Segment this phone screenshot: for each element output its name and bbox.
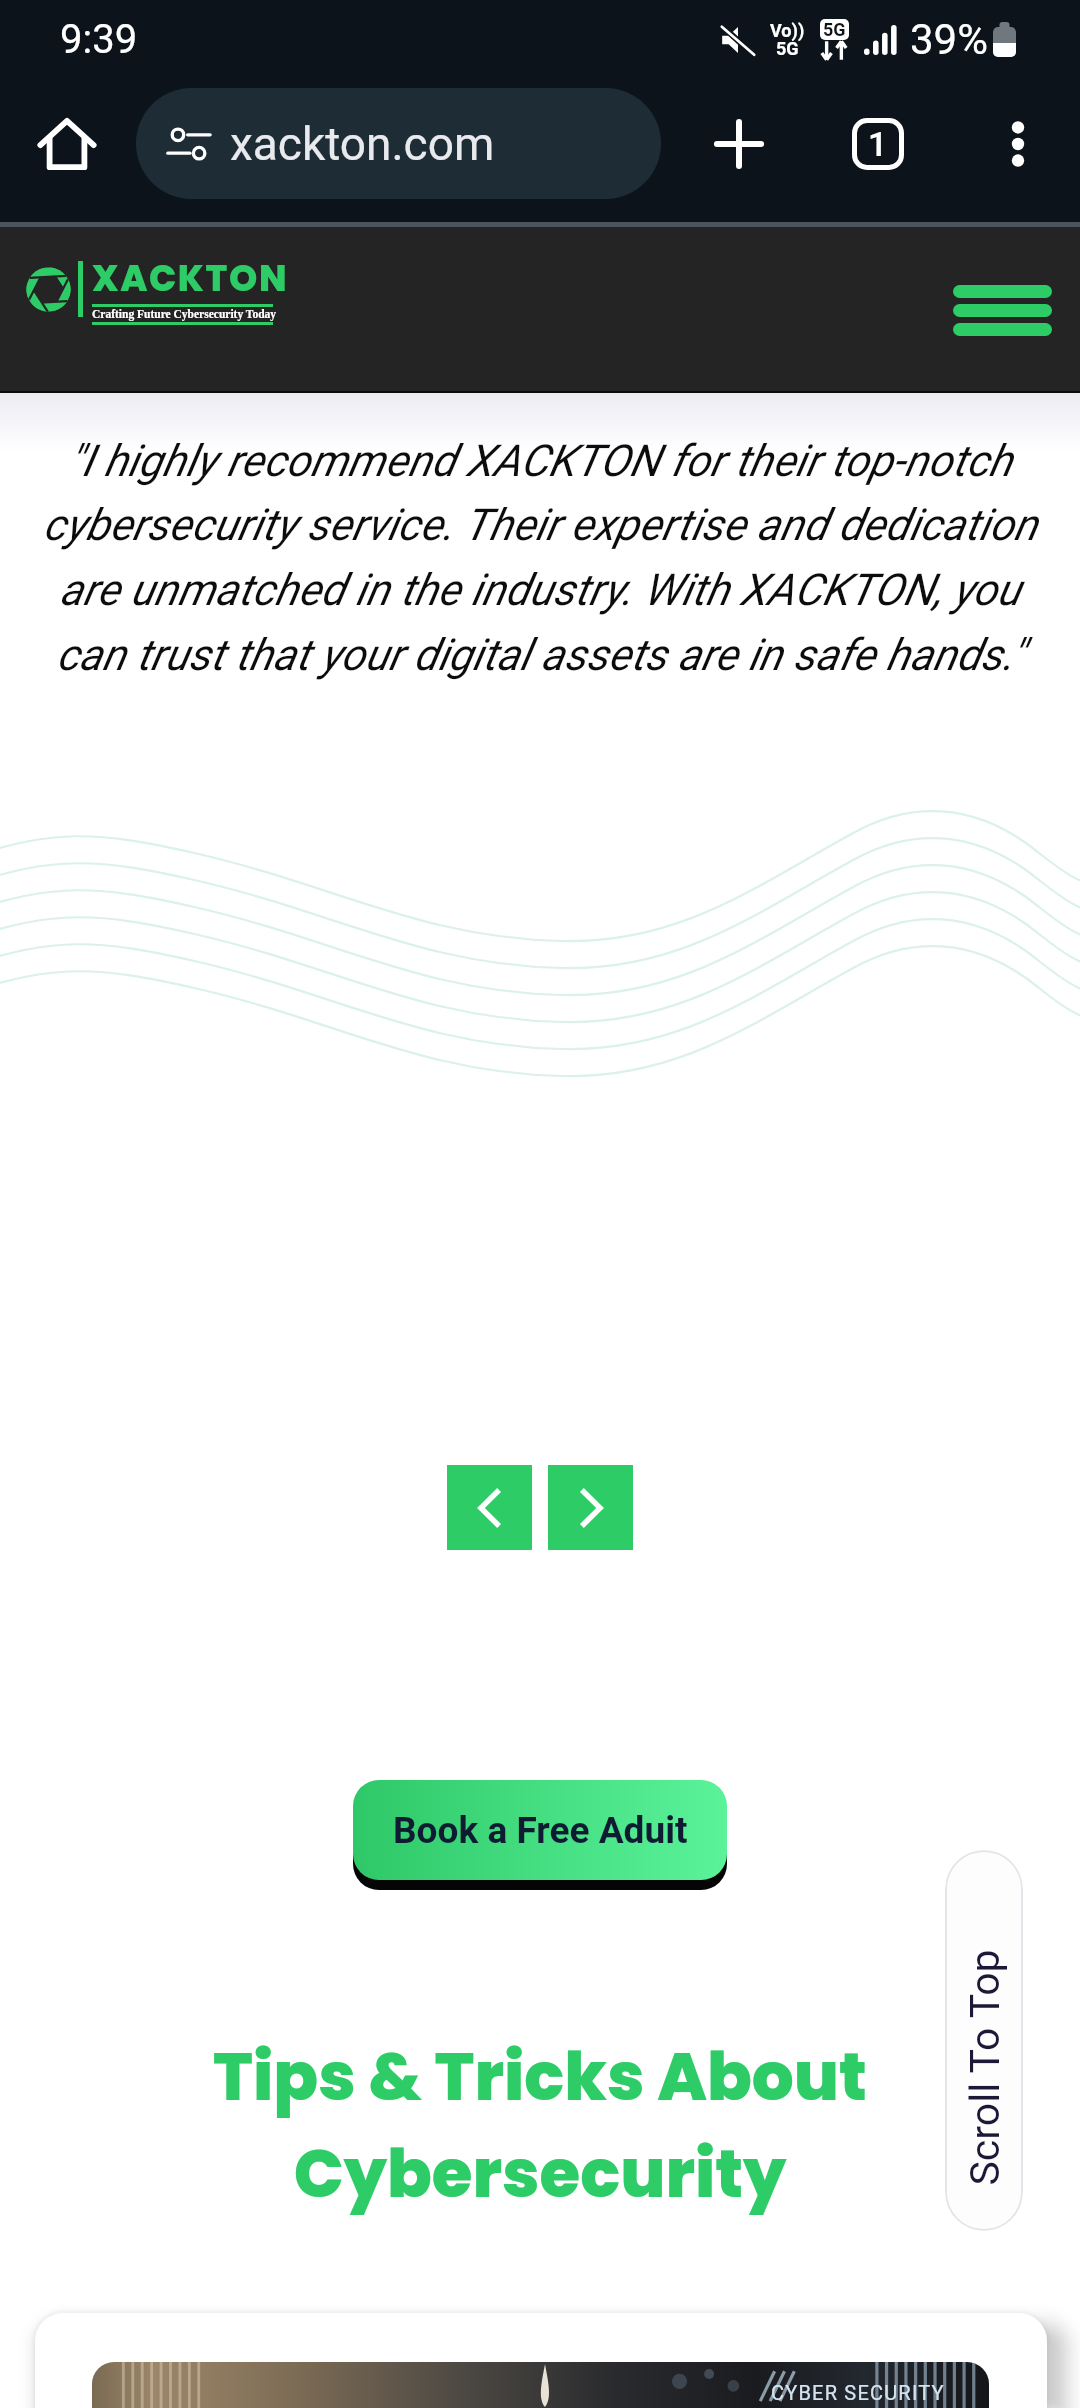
button[interactable]: Home [30,107,104,181]
staticText: 5G [823,19,846,40]
button[interactable]: Menu [953,285,1052,336]
button[interactable]: Book a Free Aduit [353,1780,727,1880]
button[interactable]: New tab [689,94,789,194]
staticText: Vo)) [770,20,805,41]
staticText: "I highly recommend XACKTON for their to… [26,435,1054,681]
button[interactable]: Tabs [828,94,928,194]
staticText: Crafting Future Cybersecurity Today [92,308,277,321]
button[interactable]: xackton.com [136,88,661,199]
staticText: Book a Free Aduit [393,1809,688,1852]
button[interactable]: Scroll To Top [945,1850,1023,2231]
button[interactable]: Next slide [548,1465,633,1550]
staticText: xackton.com [230,117,495,171]
staticText: 1 [868,124,888,164]
staticText: 39% [910,15,988,64]
staticText: Tips & Tricks About Cybersecurity [96,2031,984,2220]
staticText: XACKTON [92,253,289,303]
staticText: CYBER SECURITY [771,2381,945,2404]
staticText: 5G [776,38,799,59]
button[interactable]: More options [973,99,1063,189]
button[interactable]: CYBER SECURITY [35,2313,1047,2408]
button[interactable]: Previous slide [447,1465,532,1550]
staticText: Scroll To Top [960,1948,1008,2185]
staticText: 9:39 [60,16,138,63]
